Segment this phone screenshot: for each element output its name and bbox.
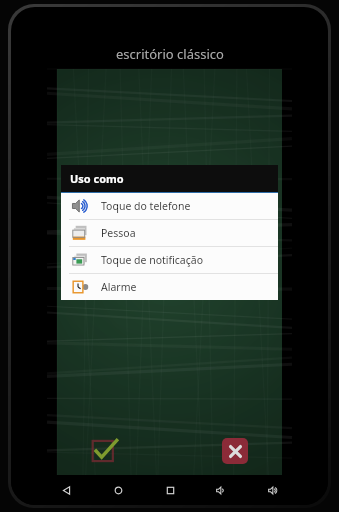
button[interactable]: Toque do telefone (61, 193, 278, 219)
button[interactable]: Cancelar (222, 438, 248, 464)
staticText: Toque de notificação (101, 253, 204, 267)
button[interactable]: Voltar (53, 477, 79, 503)
button[interactable]: Toque de notificação (61, 247, 278, 273)
button[interactable]: Confirmar (91, 437, 119, 465)
staticText: escritório clássico (116, 45, 224, 63)
button[interactable]: Início (105, 477, 131, 503)
staticText: Pessoa (101, 226, 136, 240)
staticText: Alarme (101, 280, 137, 294)
staticText: Toque do telefone (101, 199, 191, 213)
button[interactable]: Recentes (157, 477, 183, 503)
button[interactable]: Alarme (61, 274, 278, 300)
staticText: Uso como (70, 171, 124, 186)
button[interactable]: Pessoa (61, 220, 278, 246)
button[interactable]: Aumentar volume (260, 477, 286, 503)
button[interactable]: Diminuir volume (208, 477, 234, 503)
